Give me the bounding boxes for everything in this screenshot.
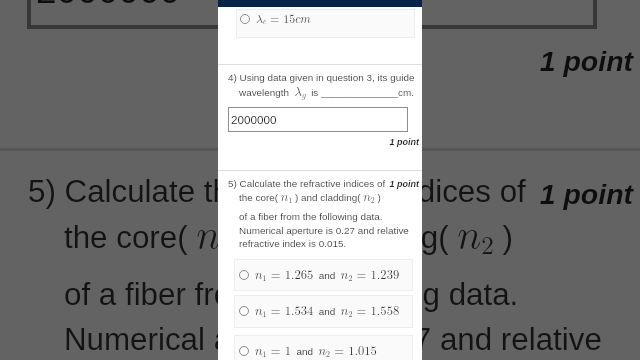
staticText: 2000000	[231, 113, 277, 126]
staticText: the core( 𝑛1 ) and cladding( 𝑛2 )	[239, 191, 381, 204]
button[interactable]: 2000000	[27, 0, 597, 29]
staticText: 2000000	[36, 0, 181, 10]
staticText: Numerical aperture is 0.27 and relative	[64, 322, 602, 357]
button[interactable]: 𝑛1 = 1 and 𝑛2 = 1.015	[234, 335, 413, 360]
staticText: 1 point	[218, 137, 419, 147]
button[interactable]: 2000000	[228, 107, 408, 132]
staticText: 5) Calculate the refractive indices of	[28, 174, 526, 209]
button[interactable]: 𝑛1 = 1.534 and 𝑛2 = 1.558	[234, 295, 413, 328]
staticText: the core( 𝑛1 ) and cladding( 𝑛2 )	[64, 216, 513, 258]
staticText: of a fiber from the following data.	[239, 211, 383, 222]
staticText: of a fiber from the following data.	[64, 277, 519, 312]
staticText: refractive index is 0.015.	[239, 238, 347, 249]
staticText: 4) Using data given in question 3, its g…	[228, 72, 415, 83]
staticText: 𝜆𝑐 = 15𝑐𝑚	[256, 13, 311, 26]
staticText: 1 point	[0, 178, 633, 210]
staticText: 1 point	[218, 179, 419, 189]
staticText: wavelength 𝜆𝑔 is ______________cm.	[239, 86, 414, 99]
staticText: 𝑛1 = 1.265 and 𝑛2 = 1.239	[255, 269, 400, 282]
staticText: 𝑛1 = 1.534 and 𝑛2 = 1.558	[255, 305, 400, 318]
button[interactable]: 𝜆𝑐 = 15𝑐𝑚	[236, 9, 415, 38]
staticText: Numerical aperture is 0.27 and relative	[239, 225, 409, 236]
button[interactable]: 𝑛1 = 1.265 and 𝑛2 = 1.239	[234, 259, 413, 291]
staticText: 5) Calculate the refractive indices of	[228, 178, 386, 189]
staticText: 𝑛1 = 1 and 𝑛2 = 1.015	[255, 345, 377, 358]
staticText: 1 point	[0, 45, 633, 77]
